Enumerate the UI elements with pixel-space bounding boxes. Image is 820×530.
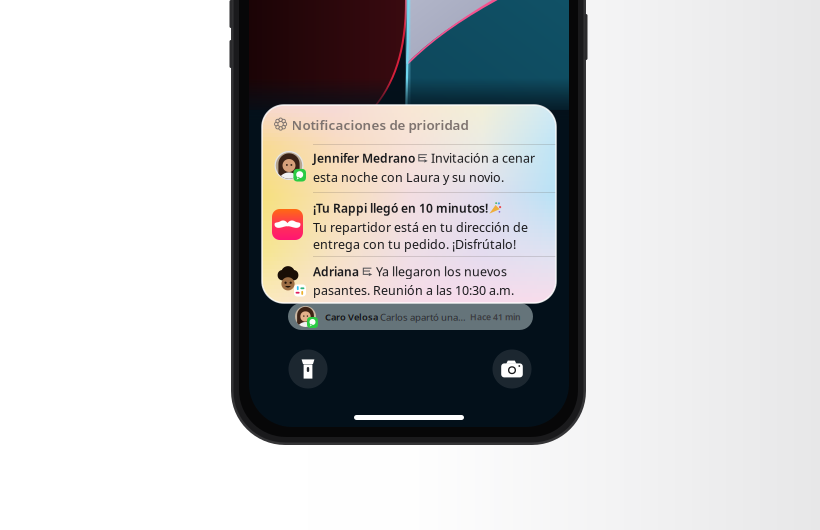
staticText: Jennifer Medrano: [313, 150, 415, 166]
staticText: Ya llegaron los nuevos: [376, 263, 507, 280]
staticText: entrega con tu pedido. ¡Disfrútalo!: [313, 236, 516, 253]
staticText: Tu repartidor está en tu dirección de: [313, 219, 528, 236]
staticText: Hace 41 min: [466, 311, 521, 323]
button[interactable]: Jennifer Medrano: [262, 145, 556, 192]
button[interactable]: Caro Velosa: [288, 303, 533, 330]
button[interactable]: Adriana: [262, 257, 556, 303]
button[interactable]: Camera: [492, 349, 531, 388]
staticText: pasantes. Reunión a las 10:30 a.m.: [313, 282, 514, 299]
staticText: ¡Tu Rappi llegó en 10 minutos!: [313, 200, 488, 216]
staticText: Caro Velosa: [325, 311, 378, 323]
staticText: Notificaciones de prioridad: [291, 116, 468, 134]
button[interactable]: Flashlight: [288, 349, 327, 388]
staticText: Invitación a cenar: [431, 150, 535, 166]
staticText: esta noche con Laura y su novio.: [313, 169, 504, 186]
staticText: Carlos apartó una…: [378, 311, 466, 323]
button[interactable]: ¡Tu Rappi llegó en 10 minutos!: [262, 193, 556, 256]
staticText: Adriana: [313, 263, 359, 279]
